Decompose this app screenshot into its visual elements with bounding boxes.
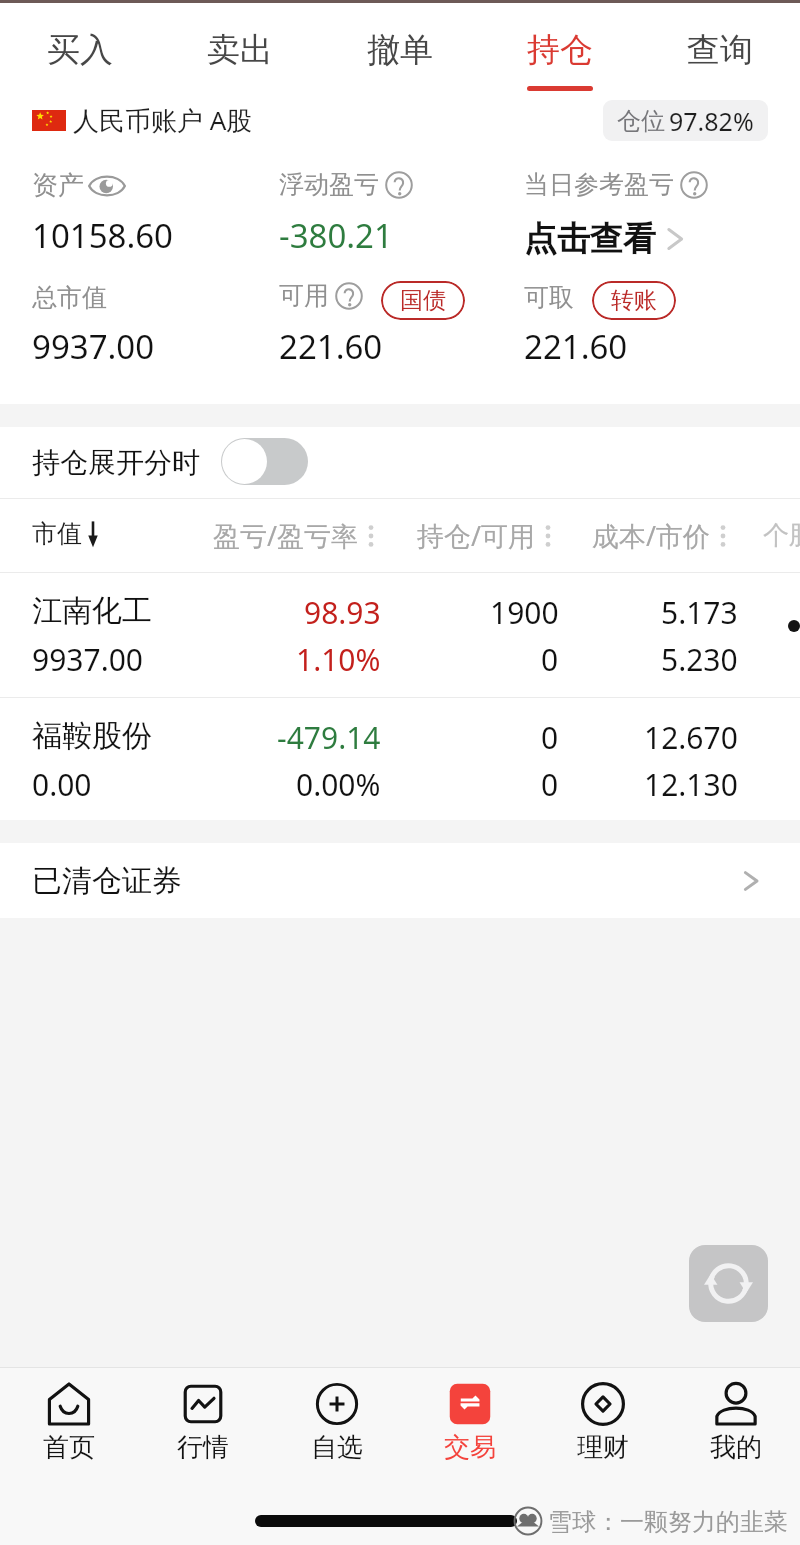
staticText: 国债: [400, 286, 446, 315]
button[interactable]: 已清仓证券: [0, 843, 800, 918]
staticText: 交易: [444, 1431, 496, 1464]
staticText: 自选: [311, 1431, 363, 1464]
button[interactable]: 自选: [270, 1372, 403, 1472]
staticText: 持仓: [527, 29, 593, 71]
staticText: 0: [541, 717, 559, 758]
staticText: 买入: [47, 29, 113, 71]
staticText: 福鞍股份: [32, 717, 152, 755]
staticText: 98.93: [304, 592, 381, 633]
staticText: 已清仓证券: [32, 862, 182, 900]
staticText: 总市值: [32, 282, 107, 313]
staticText: 转账: [611, 286, 657, 315]
button[interactable]: 福鞍股份: [0, 698, 800, 822]
staticText: -479.14: [277, 717, 381, 758]
staticText: 当日参考盈亏: [524, 169, 674, 200]
staticText: 12.130: [644, 764, 738, 805]
button[interactable]: 国债: [381, 281, 465, 320]
staticText: 盈亏/盈亏率: [213, 517, 359, 554]
button[interactable]: 仓位: [603, 100, 768, 141]
staticText: 仓位: [617, 106, 665, 136]
button[interactable]: 查询: [640, 3, 800, 91]
button[interactable]: 江南化工: [0, 573, 800, 697]
staticText: 0.00: [32, 764, 92, 805]
staticText: 雪球：一颗努力的韭菜: [548, 1507, 788, 1537]
staticText: 市值: [32, 518, 82, 549]
button[interactable]: 首页: [2, 1372, 136, 1472]
staticText: -380.21: [279, 213, 393, 258]
button[interactable]: 卖出: [160, 3, 320, 91]
button[interactable]: 撤单: [320, 3, 480, 91]
button[interactable]: 买入: [0, 3, 160, 91]
staticText: 资产: [32, 169, 84, 202]
staticText: 0: [541, 639, 559, 680]
button[interactable]: Refresh: [689, 1245, 768, 1322]
button[interactable]: 交易: [403, 1372, 536, 1472]
staticText: 221.60: [524, 324, 628, 369]
staticText: 0.00%: [296, 764, 381, 805]
staticText: 221.60: [279, 324, 383, 369]
staticText: 成本/市价: [592, 517, 711, 554]
staticText: 5.173: [661, 592, 738, 633]
staticText: 9937.00: [32, 324, 155, 369]
staticText: 5.230: [661, 639, 738, 680]
staticText: 0: [541, 764, 559, 805]
staticText: 97.82%: [669, 104, 754, 138]
staticText: 卖出: [207, 29, 273, 71]
button[interactable]: 持仓: [480, 3, 640, 91]
button[interactable]: 行情: [136, 1372, 270, 1472]
staticText: 1.10%: [296, 639, 381, 680]
button[interactable]: 我的: [669, 1372, 800, 1472]
staticText: 人民币账户 A股: [73, 102, 253, 138]
staticText: 行情: [177, 1431, 229, 1464]
staticText: 可用: [279, 280, 329, 311]
staticText: 首页: [43, 1431, 95, 1464]
staticText: 查询: [687, 29, 753, 71]
staticText: 可取: [524, 282, 574, 313]
staticText: 持仓展开分时: [32, 445, 200, 480]
staticText: 12.670: [644, 717, 738, 758]
staticText: 浮动盈亏: [279, 169, 379, 200]
button[interactable]: 理财: [536, 1372, 669, 1472]
staticText: 撤单: [367, 29, 433, 71]
staticText: 9937.00: [32, 639, 143, 680]
staticText: 江南化工: [32, 592, 152, 630]
staticText: 点击查看: [524, 218, 656, 260]
staticText: 1900: [490, 592, 559, 633]
staticText: 持仓/可用: [417, 517, 536, 554]
button[interactable]: 转账: [592, 281, 676, 320]
button[interactable]: [221, 438, 308, 485]
staticText: 理财: [577, 1431, 629, 1464]
staticText: 10158.60: [32, 213, 173, 258]
staticText: 我的: [710, 1431, 762, 1464]
staticText: 个股: [763, 519, 800, 552]
